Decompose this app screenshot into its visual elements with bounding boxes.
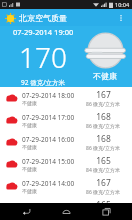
staticText: 86 微克/立方米: [86, 101, 120, 108]
staticText: 170: [19, 38, 67, 76]
staticText: 07-29-2014 18:00: [22, 91, 75, 100]
staticText: 84 微克/立方米: [86, 167, 120, 174]
staticText: 北京空气质量: [19, 13, 67, 23]
staticText: 不健康: [22, 166, 37, 172]
staticText: 不健康: [22, 100, 37, 106]
staticText: 86 微克/立方米: [86, 123, 120, 130]
staticText: 165: [96, 199, 111, 203]
button[interactable]: 07-29-2014 17:00: [0, 109, 132, 131]
button[interactable]: 07-29-2014 15:00: [0, 153, 132, 175]
staticText: 92 微克/立方米: [21, 78, 66, 87]
staticText: 07-29-2014 15:00: [22, 157, 75, 166]
button[interactable]: More options: [114, 11, 128, 25]
button[interactable]: 07-29-2014 18:00: [0, 87, 132, 109]
staticText: 不健康: [22, 188, 37, 194]
staticText: 不健康: [93, 71, 117, 81]
staticText: 168: [96, 111, 111, 123]
staticText: 07-29-2014 17:00: [22, 113, 75, 122]
staticText: 168: [96, 133, 111, 145]
button[interactable]: Recent apps: [92, 203, 120, 220]
staticText: 86 微克/立方米: [86, 145, 120, 152]
staticText: 86 微克/立方米: [86, 189, 120, 196]
staticText: 不健康: [22, 122, 37, 128]
button[interactable]: Home: [52, 203, 80, 220]
button[interactable]: 07-29-2014 13:00: [0, 197, 132, 203]
staticText: 07-29-2014 14:00: [22, 179, 75, 188]
staticText: 167: [96, 89, 111, 101]
button[interactable]: 07-29-2014 19:00: [0, 26, 132, 87]
staticText: 07-29-2014 19:00: [13, 27, 74, 37]
button[interactable]: 07-29-2014 16:00: [0, 131, 132, 153]
button[interactable]: App icon: [4, 12, 16, 24]
staticText: 07-29-2014 16:00: [22, 135, 75, 144]
button[interactable]: Back: [12, 203, 40, 220]
staticText: 165: [96, 155, 111, 167]
staticText: 167: [96, 177, 111, 189]
button[interactable]: 07-29-2014 14:00: [0, 175, 132, 197]
staticText: 不健康: [22, 144, 37, 150]
staticText: 10:04: [115, 1, 130, 8]
